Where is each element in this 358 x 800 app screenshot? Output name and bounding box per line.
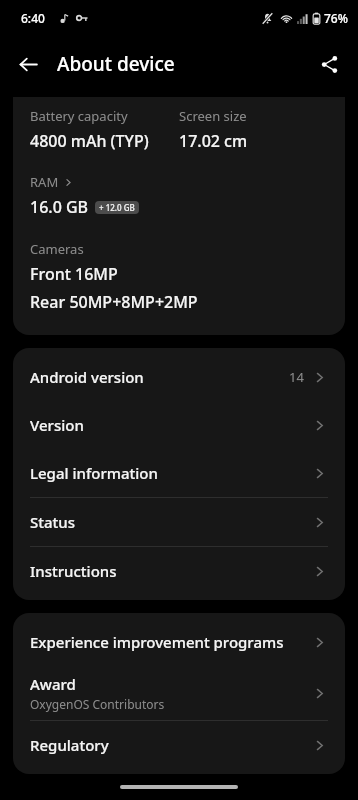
staticText: Award xyxy=(30,674,76,694)
button[interactable]: Award xyxy=(13,666,345,721)
staticText: Rear 50MP+8MP+2MP xyxy=(30,291,198,313)
staticText: Android version xyxy=(30,367,144,387)
staticText: 4800 mAh (TYP) xyxy=(30,130,149,152)
staticText: Legal information xyxy=(30,463,158,483)
staticText: Status xyxy=(30,512,76,532)
staticText: 76% xyxy=(324,10,348,26)
staticText: Cameras xyxy=(30,240,84,258)
staticText: Experience improvement programs xyxy=(30,632,284,652)
button[interactable]: Share xyxy=(309,44,349,84)
staticText: + 12.0 GB xyxy=(99,202,135,213)
staticText: Version xyxy=(30,415,84,435)
staticText: Battery capacity xyxy=(30,107,128,125)
staticText: 17.02 cm xyxy=(179,130,248,152)
button[interactable]: RAM xyxy=(30,173,74,191)
staticText: OxygenOS Contributors xyxy=(30,696,165,712)
staticText: 6:40 xyxy=(21,10,45,26)
button[interactable]: Regulatory xyxy=(13,721,345,769)
button[interactable]: Instructions xyxy=(13,547,345,595)
staticText: Regulatory xyxy=(30,735,109,755)
staticText: About device xyxy=(57,51,175,77)
button[interactable]: Status xyxy=(13,498,345,547)
button[interactable]: Android version xyxy=(13,353,345,401)
staticText: RAM xyxy=(30,173,59,191)
button[interactable]: Back xyxy=(8,44,48,84)
button[interactable]: Legal information xyxy=(13,449,345,498)
staticText: Instructions xyxy=(30,561,117,581)
staticText: 14 xyxy=(289,368,304,386)
button[interactable]: Experience improvement programs xyxy=(13,618,345,666)
staticText: Screen size xyxy=(179,107,247,125)
button[interactable]: Version xyxy=(13,401,345,449)
staticText: Front 16MP xyxy=(30,263,118,285)
staticText: 16.0 GB xyxy=(30,196,89,218)
